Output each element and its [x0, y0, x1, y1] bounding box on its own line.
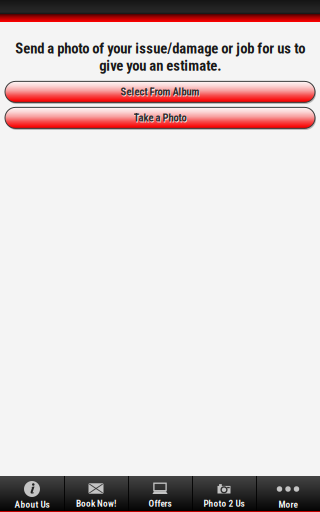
- button[interactable]: About Us: [0, 476, 64, 511]
- staticText: Offers: [148, 498, 171, 509]
- button[interactable]: More: [256, 476, 320, 511]
- staticText: More: [278, 499, 297, 510]
- staticText: Take a Photo: [133, 112, 186, 124]
- button[interactable]: Offers: [128, 476, 192, 511]
- staticText: Take a Photo: [134, 112, 187, 125]
- staticText: Send a photo of your issue/damage or job…: [15, 40, 305, 74]
- button[interactable]: Take a Photo: [5, 107, 315, 128]
- button[interactable]: Select From Album: [5, 81, 315, 102]
- staticText: About Us: [14, 499, 49, 510]
- button[interactable]: Book Now!: [64, 476, 128, 511]
- staticText: Photo 2 Us: [203, 498, 244, 509]
- staticText: Select From Album: [121, 86, 200, 99]
- staticText: Book Now!: [76, 498, 116, 509]
- staticText: Select From Album: [120, 86, 199, 98]
- button[interactable]: Photo 2 Us: [192, 476, 256, 511]
